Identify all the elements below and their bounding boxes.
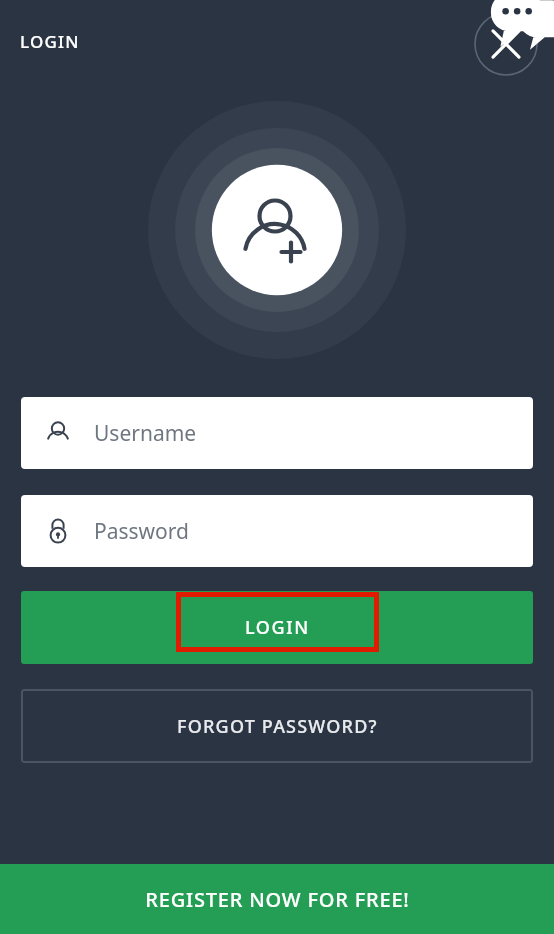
staticText: Username: [94, 419, 197, 448]
staticText: FORGOT PASSWORD?: [177, 714, 378, 739]
staticText: LOGIN: [245, 615, 310, 640]
staticText: LOGIN: [20, 30, 80, 53]
button[interactable]: Close: [474, 12, 538, 76]
button[interactable]: LOGIN: [21, 591, 533, 664]
staticText: Password: [94, 517, 189, 546]
button[interactable]: REGISTER NOW FOR FREE!: [0, 864, 554, 934]
button[interactable]: FORGOT PASSWORD?: [21, 689, 533, 763]
button[interactable]: Username: [21, 397, 533, 469]
button[interactable]: Password: [21, 495, 533, 567]
staticText: REGISTER NOW FOR FREE!: [145, 886, 410, 913]
